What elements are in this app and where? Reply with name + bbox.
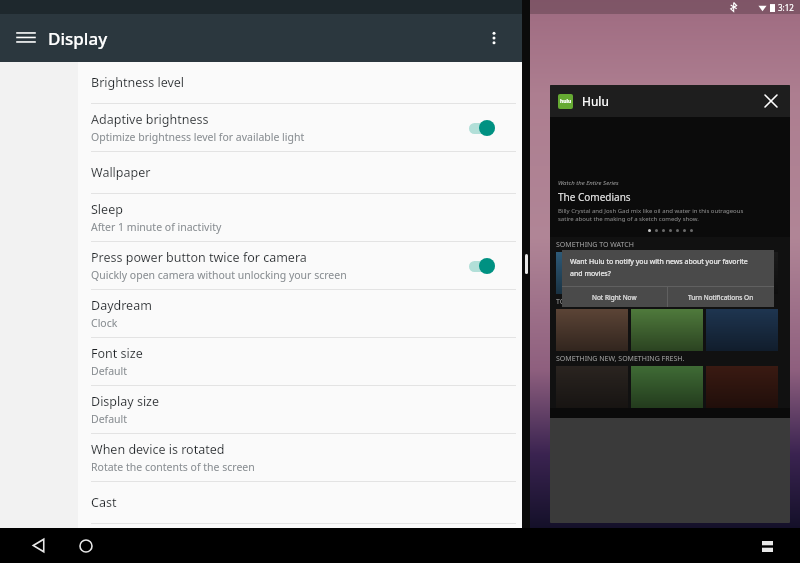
button[interactable]: Adaptive brightness xyxy=(78,104,522,151)
staticText: Wallpaper xyxy=(91,164,151,181)
button[interactable]: Back xyxy=(22,528,54,563)
staticText: SOMETHING NEW, SOMETHING FRESH. xyxy=(556,354,685,364)
button[interactable]: Home xyxy=(70,528,102,563)
staticText: Clock xyxy=(91,316,118,330)
button[interactable] xyxy=(706,366,778,408)
button[interactable]: Press power button twice for camera xyxy=(78,242,522,289)
button[interactable] xyxy=(556,366,628,408)
button[interactable] xyxy=(631,309,703,351)
staticText: Sleep xyxy=(91,201,123,218)
staticText: and movies? xyxy=(570,269,611,279)
staticText: Turn Notifications On xyxy=(688,293,754,302)
staticText: The Comedians xyxy=(558,190,631,204)
button[interactable]: Font size xyxy=(78,338,522,385)
staticText: Display size xyxy=(91,393,160,410)
staticText: Font size xyxy=(91,345,143,362)
button[interactable] xyxy=(631,252,703,294)
button[interactable]: Press power button twice for camera togg… xyxy=(466,253,500,279)
button[interactable]: When device is rotated xyxy=(78,434,522,481)
button[interactable] xyxy=(556,252,628,294)
staticText: Optimize brightness level for available … xyxy=(91,130,305,144)
button[interactable]: Turn Notifications On xyxy=(668,287,774,307)
button[interactable] xyxy=(706,252,778,294)
staticText: TOP PICKS FOR YOU xyxy=(556,297,622,307)
staticText: Press power button twice for camera xyxy=(91,249,307,266)
button[interactable] xyxy=(556,309,628,351)
staticText: Watch the Entire Series xyxy=(558,179,619,187)
staticText: SOMETHING TO WATCH xyxy=(556,240,634,250)
staticText: Brightness level xyxy=(91,74,185,91)
button[interactable]: hulu xyxy=(550,85,790,523)
staticText: Rotate the contents of the screen xyxy=(91,460,255,474)
button[interactable]: More options xyxy=(476,20,512,56)
staticText: Default xyxy=(91,364,128,378)
staticText: 3:12 xyxy=(778,2,794,13)
button[interactable]: Daydream xyxy=(78,290,522,337)
button[interactable]: Display size xyxy=(78,386,522,433)
staticText: Want Hulu to notify you with news about … xyxy=(570,257,766,267)
button[interactable]: Wallpaper xyxy=(78,152,522,193)
staticText: Default xyxy=(91,412,128,426)
button[interactable]: Open navigation drawer xyxy=(8,20,44,56)
button[interactable]: Resize split screen xyxy=(525,254,528,274)
staticText: After 1 minute of inactivity xyxy=(91,220,222,234)
staticText: Quickly open camera without unlocking yo… xyxy=(91,268,347,282)
button[interactable] xyxy=(706,309,778,351)
staticText: Not Right Now xyxy=(592,293,637,302)
staticText: Hulu xyxy=(582,93,609,109)
staticText: satire about the making of a sketch come… xyxy=(558,215,699,223)
button[interactable]: Brightness level xyxy=(78,62,522,103)
staticText: When device is rotated xyxy=(91,441,225,458)
button[interactable]: Cast xyxy=(78,482,522,523)
staticText: Adaptive brightness xyxy=(91,111,209,128)
button[interactable]: Not Right Now xyxy=(562,287,667,307)
staticText: Billy Crystal and Josh Gad mix like oil … xyxy=(558,207,744,215)
staticText: Cast xyxy=(91,494,117,511)
button[interactable]: Adaptive brightness toggle xyxy=(466,115,500,141)
button[interactable]: Sleep xyxy=(78,194,522,241)
staticText: Display xyxy=(48,27,108,50)
button[interactable]: Recent apps xyxy=(752,531,782,561)
staticText: hulu xyxy=(560,98,572,105)
button[interactable] xyxy=(631,366,703,408)
staticText: Daydream xyxy=(91,297,152,314)
button[interactable]: Close Hulu xyxy=(760,90,782,112)
